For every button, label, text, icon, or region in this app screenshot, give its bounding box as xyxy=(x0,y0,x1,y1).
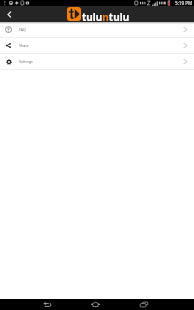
button[interactable]: FAQ xyxy=(0,22,194,37)
button[interactable]: Share xyxy=(0,38,194,53)
staticText: tuluntulu xyxy=(82,10,130,24)
button[interactable]: Recent apps xyxy=(132,299,155,310)
button[interactable]: Back xyxy=(0,7,18,22)
button[interactable]: Back xyxy=(35,299,58,310)
button[interactable]: Settings xyxy=(0,54,194,69)
staticText: 5:19 PM xyxy=(175,0,193,6)
staticText: Settings xyxy=(19,59,33,64)
staticText: FAQ xyxy=(19,27,26,32)
staticText: Share xyxy=(19,43,29,48)
button[interactable]: Home xyxy=(84,299,107,310)
